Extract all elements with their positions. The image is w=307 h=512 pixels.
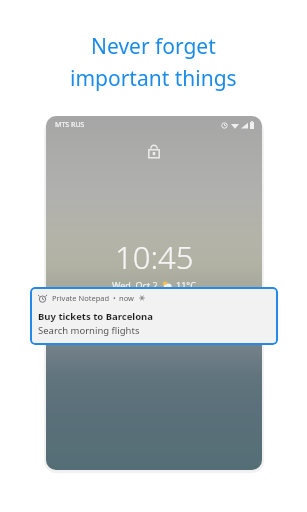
- staticText: 11°C: [176, 279, 196, 291]
- staticText: Search morning flights: [38, 324, 140, 337]
- staticText: important things: [70, 64, 237, 93]
- staticText: Private Notepad: [52, 293, 110, 303]
- staticText: 10:45: [115, 236, 194, 278]
- staticText: •: [113, 293, 116, 303]
- button[interactable]: Private Notepad: [30, 287, 278, 345]
- staticText: Never forget: [91, 32, 216, 61]
- staticText: now: [119, 293, 134, 303]
- staticText: MTS RUS: [55, 120, 85, 130]
- staticText: Wed, Oct 2: [112, 279, 158, 291]
- staticText: Buy tickets to Barcelona: [38, 310, 153, 323]
- other: Locked: [147, 143, 161, 160]
